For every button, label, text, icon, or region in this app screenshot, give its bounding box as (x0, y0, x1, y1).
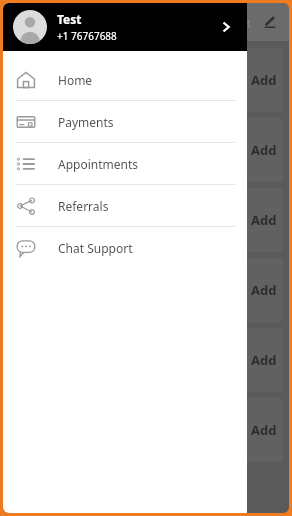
staticText: Chat Support (58, 240, 133, 256)
button[interactable]: Referrals (3, 185, 247, 226)
staticText: Add (251, 351, 277, 369)
button[interactable]: Appointments (3, 143, 247, 184)
button[interactable]: Add (9, 188, 283, 252)
staticText: Referrals (58, 198, 109, 214)
button[interactable]: Add (9, 48, 283, 112)
staticText: Home (58, 72, 93, 88)
staticText: Add (251, 71, 277, 89)
button[interactable]: Add (9, 328, 283, 392)
button[interactable]: Chat Support (3, 227, 247, 268)
button[interactable]: Add (9, 258, 283, 322)
button[interactable]: Add (9, 398, 283, 462)
staticText: +1 76767688 (57, 29, 117, 43)
staticText: Add (251, 211, 277, 229)
button[interactable]: Payments (3, 101, 247, 142)
button[interactable]: Home (3, 59, 247, 100)
button[interactable]: Test (3, 3, 247, 51)
staticText: Payments (58, 114, 114, 130)
staticText: Add (251, 281, 277, 299)
button[interactable]: Profile details (215, 16, 237, 38)
staticText: Test (57, 11, 82, 27)
staticText: Appointments (58, 156, 139, 172)
staticText: ot (240, 15, 251, 30)
button[interactable]: Add (9, 118, 283, 182)
button[interactable]: Edit (261, 13, 279, 31)
staticText: Add (251, 421, 277, 439)
staticText: Add (251, 141, 277, 159)
